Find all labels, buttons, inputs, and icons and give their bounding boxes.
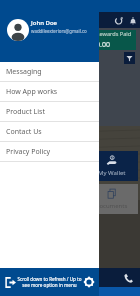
button[interactable]: Notifications: [126, 14, 139, 27]
button[interactable]: Privacy Policy: [0, 142, 99, 162]
button[interactable]: Filter: [124, 52, 135, 64]
staticText: Privacy Policy: [6, 147, 51, 157]
button[interactable]: [4, 30, 88, 50]
button[interactable]: Call: [121, 271, 135, 285]
staticText: 0.00: [96, 40, 110, 50]
button[interactable]: Refresh: [112, 14, 125, 27]
button[interactable]: My Wallet: [85, 151, 138, 181]
staticText: Documents: [95, 202, 128, 210]
staticText: Messaging: [6, 67, 42, 77]
button[interactable]: Logout: [3, 275, 17, 289]
button[interactable]: Documents: [85, 184, 138, 214]
button[interactable]: Rewards Paid: [92, 30, 136, 50]
staticText: Contact Us: [6, 127, 42, 137]
button[interactable]: How App works: [0, 82, 99, 102]
staticText: How App works: [6, 87, 58, 97]
button[interactable]: Product List: [0, 102, 99, 122]
staticText: My Wallet: [98, 169, 126, 177]
button[interactable]: Settings: [82, 275, 96, 289]
staticText: Product List: [6, 107, 45, 117]
button[interactable]: Contact Us: [0, 122, 99, 142]
staticText: Rewards Paid: [96, 30, 132, 38]
staticText: John Doe: [31, 19, 57, 27]
staticText: waddileexteriors@gmail.co: [31, 28, 87, 34]
staticText: Scroll down to Refresh / Up to see more …: [17, 276, 82, 288]
button[interactable]: Messaging: [0, 62, 99, 82]
